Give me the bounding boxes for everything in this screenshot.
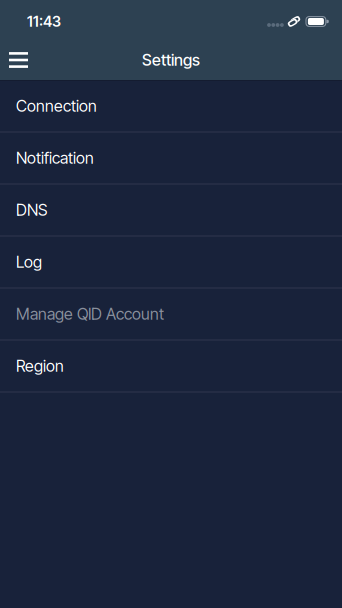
staticText: Region xyxy=(16,356,64,376)
staticText: Manage QID Account xyxy=(16,304,164,324)
staticText: 11:43 xyxy=(27,13,61,30)
button[interactable]: Log xyxy=(0,237,342,289)
button[interactable]: Connection xyxy=(0,81,342,133)
button[interactable]: Manage QID Account xyxy=(0,289,342,341)
staticText: Settings xyxy=(142,50,200,70)
button[interactable]: Menu xyxy=(0,40,41,80)
button[interactable]: Region xyxy=(0,341,342,393)
staticText: Notification xyxy=(16,148,94,168)
staticText: Log xyxy=(16,252,42,272)
button[interactable]: Notification xyxy=(0,133,342,185)
staticText: DNS xyxy=(16,200,47,220)
button[interactable]: DNS xyxy=(0,185,342,237)
staticText: Connection xyxy=(16,96,97,116)
